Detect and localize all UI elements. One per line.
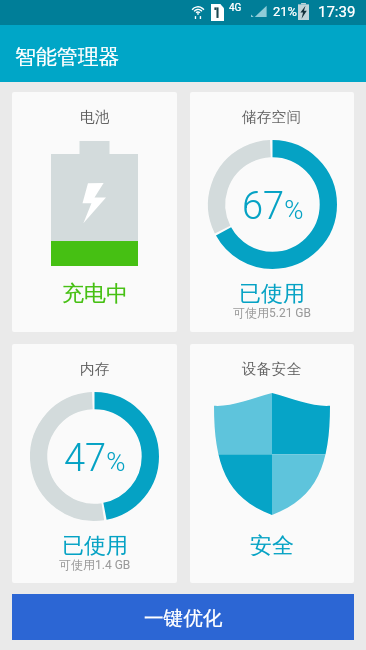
staticText: 67% — [242, 184, 304, 229]
staticText: 储存空间 — [242, 108, 302, 127]
staticText: 一键优化 — [144, 606, 223, 631]
staticText: 智能管理器 — [15, 44, 120, 70]
staticText: 设备安全 — [242, 360, 302, 379]
staticText: 内存 — [80, 360, 110, 379]
staticText: 已使用 — [239, 280, 305, 308]
staticText: 47% — [64, 436, 126, 481]
button[interactable]: 电池 — [12, 92, 177, 332]
staticText: 充电中 — [62, 280, 128, 308]
button[interactable]: 设备安全 — [190, 344, 354, 583]
staticText: 可使用1.4 GB — [59, 557, 131, 572]
staticText: 可使用5.21 GB — [233, 305, 312, 320]
staticText: 17:39 — [318, 3, 356, 21]
staticText: 安全 — [250, 532, 294, 560]
button[interactable]: 储存空间 — [190, 92, 354, 332]
button[interactable]: 内存 — [12, 344, 177, 583]
staticText: 电池 — [80, 108, 110, 127]
staticText: 4G — [229, 2, 242, 14]
staticText: 21% — [273, 4, 298, 19]
staticText: 已使用 — [62, 532, 128, 560]
button[interactable]: 一键优化 — [12, 594, 354, 640]
